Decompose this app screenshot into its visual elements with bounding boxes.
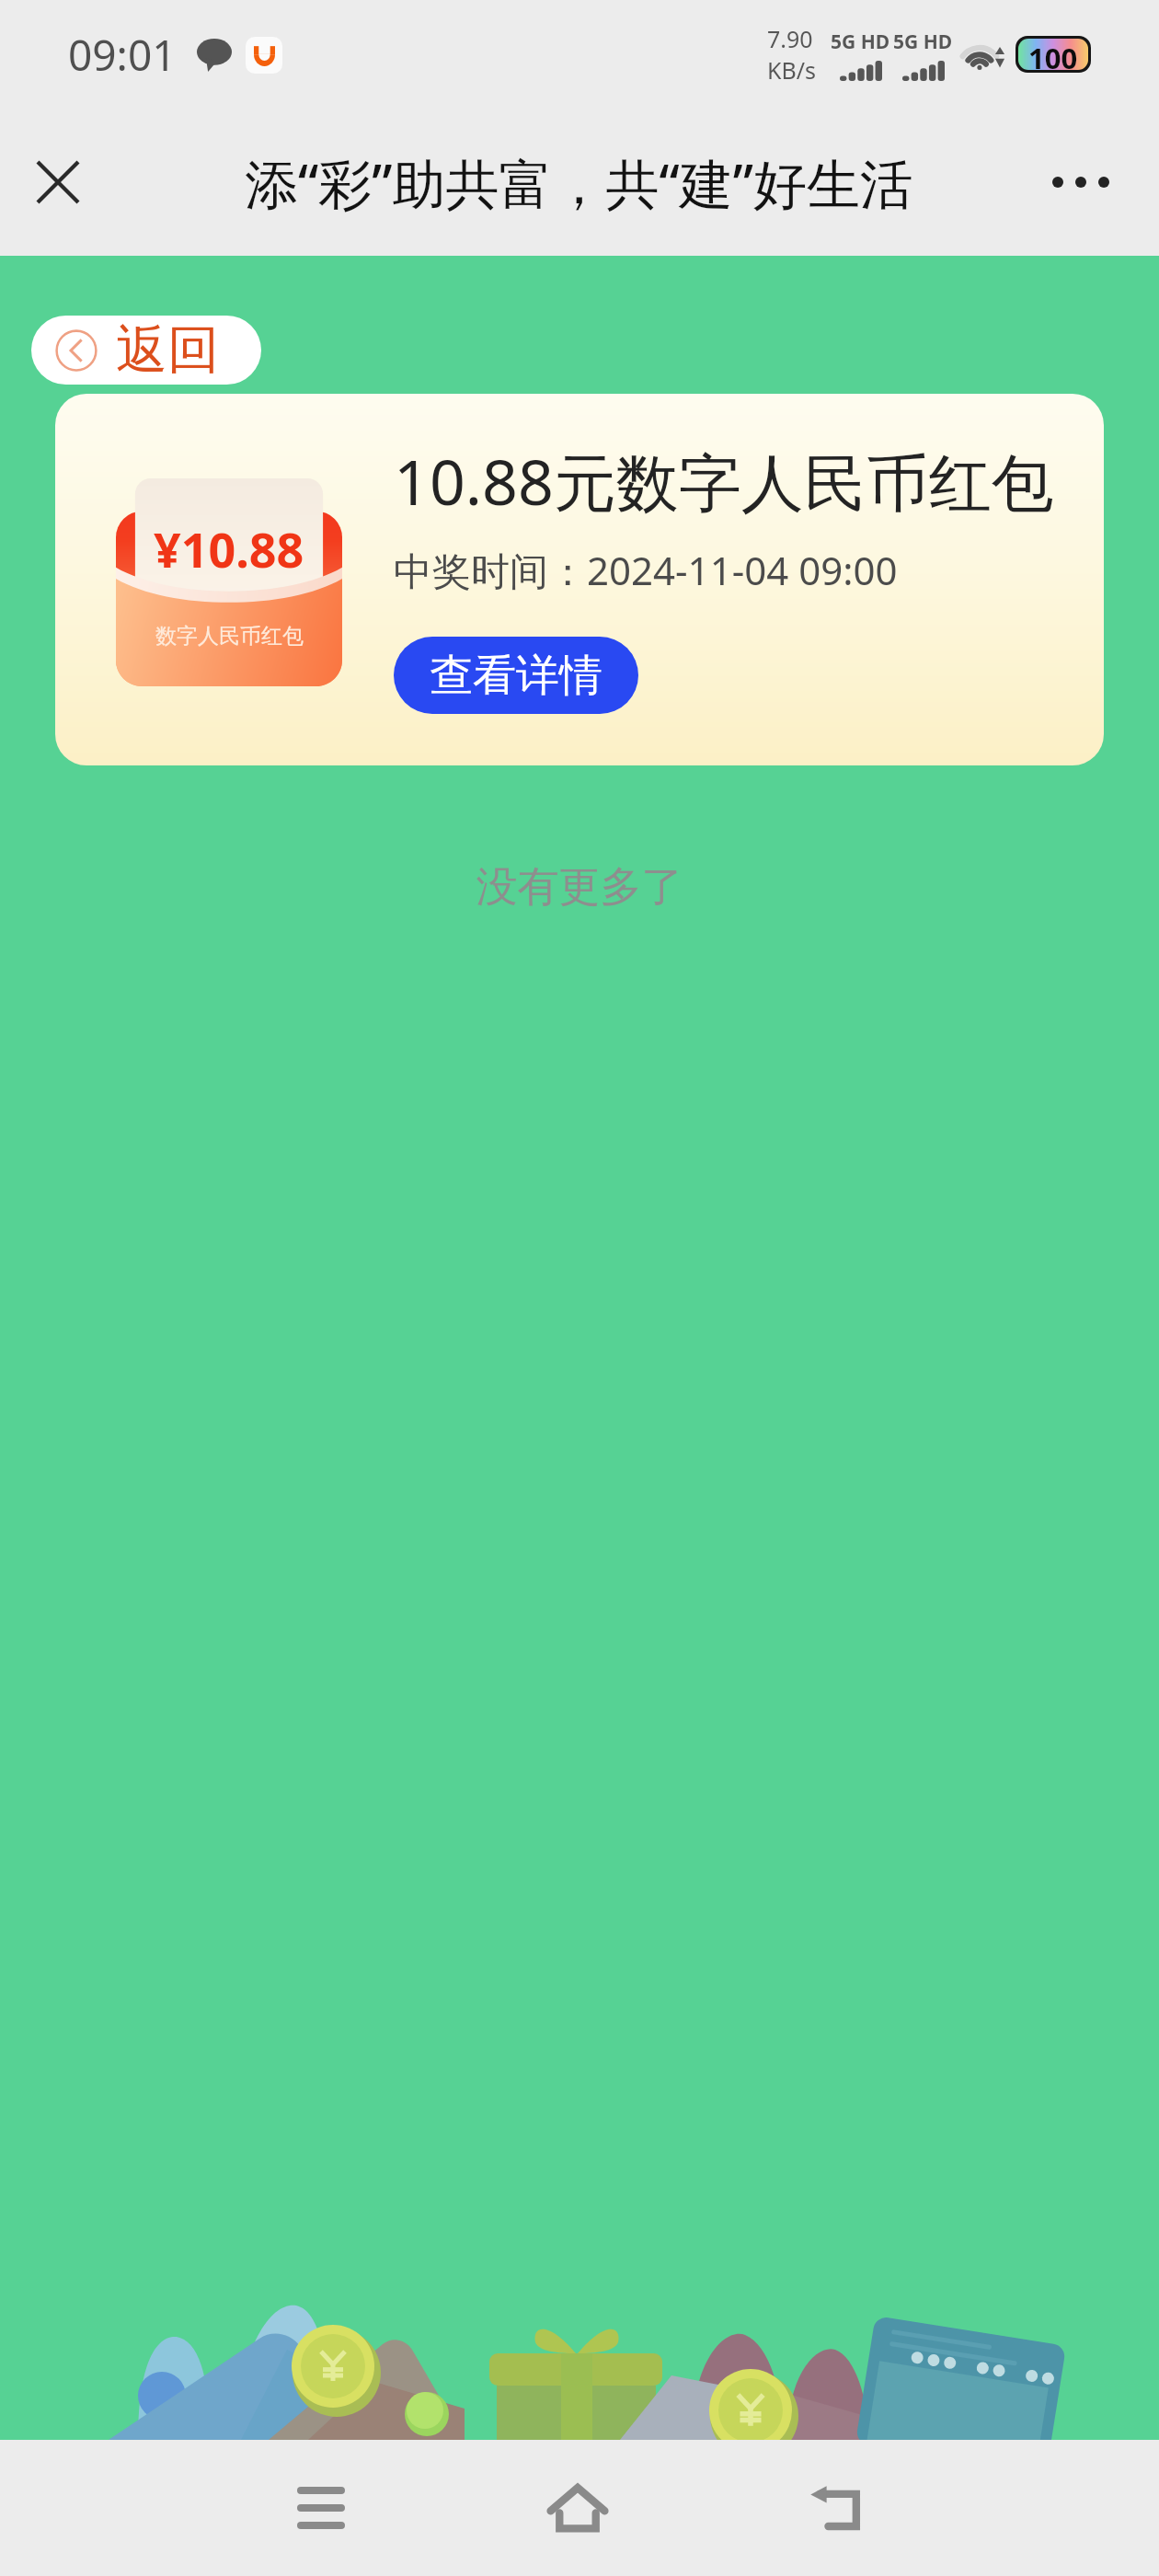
staticText: 数字人民币红包: [155, 623, 304, 650]
staticText: 返回: [116, 317, 219, 383]
button[interactable]: Home: [504, 2440, 651, 2576]
staticText: 10.88元数字人民币红包: [394, 438, 1054, 523]
button[interactable]: 返回: [31, 316, 261, 385]
button[interactable]: ¥10.88: [55, 394, 1104, 765]
button[interactable]: 查看详情: [394, 637, 638, 714]
staticText: 100: [1028, 39, 1078, 70]
button[interactable]: More options: [1030, 132, 1131, 233]
button[interactable]: Close: [7, 132, 109, 233]
staticText: 中奖时间：2024-11-04 09:00: [394, 544, 898, 596]
staticText: 5G HD: [893, 29, 953, 55]
button[interactable]: Back: [764, 2440, 912, 2576]
staticText: KB/s: [767, 54, 817, 86]
staticText: 7.90: [767, 23, 813, 54]
staticText: 添“彩”助共富，共“建”好生活: [245, 146, 914, 219]
staticText: 查看详情: [430, 649, 602, 703]
button[interactable]: Recent apps: [247, 2440, 395, 2576]
staticText: 没有更多了: [0, 861, 1159, 914]
staticText: 5G HD: [831, 29, 890, 55]
staticText: ¥10.88: [154, 516, 304, 581]
staticText: 09:01: [68, 26, 177, 84]
